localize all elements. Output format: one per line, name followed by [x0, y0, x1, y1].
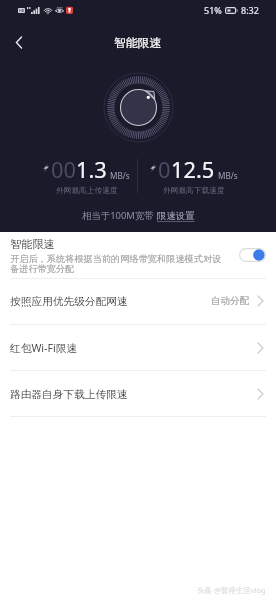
staticText: 00 — [51, 155, 76, 185]
staticText: 头条 @暂停生活vlog — [197, 585, 266, 595]
staticText: MB/s — [218, 170, 238, 181]
button[interactable]: 限速设置 — [157, 210, 195, 222]
staticText: 自动分配 — [211, 295, 250, 307]
button[interactable]: 智能限速开关 — [239, 248, 266, 262]
staticText: 外网最高下载速度 — [163, 186, 225, 196]
staticText: 开启后，系统将根据当前的网络带宽和限速模式对设备进行带宽分配 — [10, 253, 228, 274]
staticText: 限速设置 — [157, 210, 195, 222]
staticText: 12.5 — [171, 155, 215, 185]
staticText: 按照应用优先级分配网速 — [10, 295, 128, 308]
staticText: 外网最高上传速度 — [56, 186, 118, 196]
button[interactable]: 路由器自身下载上传限速 — [0, 371, 276, 417]
staticText: HD — [19, 8, 25, 13]
staticText: 红包Wi-Fi限速 — [10, 341, 78, 356]
button[interactable]: 智能限速 — [0, 232, 276, 278]
staticText: 相当于100M宽带 — [82, 209, 154, 222]
button[interactable]: 红包Wi-Fi限速 — [0, 325, 276, 371]
staticText: 1.3 — [76, 155, 107, 185]
button[interactable]: Back — [2, 25, 36, 59]
staticText: 0 — [158, 155, 171, 185]
staticText: 51% — [204, 4, 222, 16]
button[interactable]: 按照应用优先级分配网速 — [0, 278, 276, 324]
staticText: 路由器自身下载上传限速 — [10, 388, 128, 401]
staticText: 智能限速 — [114, 36, 162, 51]
staticText: MB/s — [110, 170, 130, 181]
staticText: 智能限速 — [10, 237, 55, 251]
staticText: 8:32 — [241, 4, 259, 16]
